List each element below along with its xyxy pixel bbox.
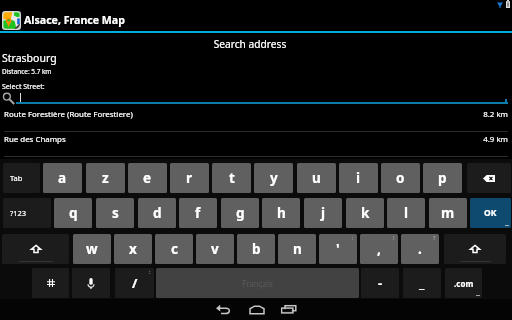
button[interactable]: Change keyboard (32, 268, 69, 298)
button[interactable]: : (319, 234, 357, 264)
staticText: 8.2 km (0, 109, 508, 120)
staticText: Strasbourg (2, 51, 57, 65)
button[interactable]: z (86, 163, 125, 193)
button[interactable]: Rue des Champs (0, 129, 512, 150)
staticText: e (143, 169, 152, 187)
staticText: ' (336, 240, 340, 258)
staticText: u (312, 169, 321, 187)
staticText: . (418, 240, 422, 258)
button[interactable]: Home (245, 302, 269, 318)
staticText: Tab (10, 173, 23, 183)
button[interactable]: Alsace, France Map (0, 0, 512, 32)
button[interactable]: Shift (2, 234, 69, 264)
button[interactable]: ?123 (3, 198, 51, 228)
staticText: Distance: 5.7 km (2, 67, 52, 76)
staticText: m (441, 204, 455, 222)
button[interactable]: h (262, 198, 300, 228)
button[interactable]: t (212, 163, 251, 193)
button[interactable]: n (278, 234, 316, 264)
button[interactable]: d (138, 198, 176, 228)
button[interactable]: b (237, 234, 275, 264)
button[interactable]: l (387, 198, 425, 228)
staticText: q (69, 204, 78, 222)
staticText: v (211, 240, 219, 258)
button[interactable]: u (297, 163, 336, 193)
staticText: k (361, 204, 370, 222)
staticText: s (112, 204, 119, 222)
staticText: b (252, 240, 261, 258)
button[interactable]: a (43, 163, 82, 193)
button[interactable]: _ (403, 268, 441, 298)
button[interactable]: q (54, 198, 92, 228)
button[interactable]: c (155, 234, 193, 264)
staticText: n (293, 240, 302, 258)
staticText: z (102, 169, 109, 187)
staticText: Français (242, 278, 273, 289)
button[interactable]: v (196, 234, 234, 264)
staticText: d (153, 204, 162, 222)
staticText: Select Street: (2, 82, 45, 92)
button[interactable]: s (96, 198, 134, 228)
button[interactable]: Route Forestière (Route Forestiere) (0, 104, 512, 125)
staticText: Route Forestière (Route Forestiere) (4, 109, 133, 120)
staticText: t (229, 169, 235, 187)
staticText: w (86, 240, 98, 258)
staticText: a (58, 169, 67, 187)
staticText: , (377, 240, 381, 258)
button[interactable]: o (381, 163, 420, 193)
button[interactable]: OK (470, 198, 511, 228)
button[interactable]: ! (360, 234, 398, 264)
staticText: j (321, 204, 326, 222)
button[interactable]: Voice input (72, 268, 110, 298)
button[interactable]: .com (445, 268, 482, 298)
button[interactable]: Back (212, 302, 236, 318)
button[interactable]: e (128, 163, 167, 193)
button[interactable]: - (361, 268, 399, 298)
staticText: .com (454, 278, 474, 289)
staticText: c (171, 240, 178, 258)
staticText: p (438, 169, 447, 187)
staticText: Alsace, France Map (24, 13, 125, 27)
button[interactable]: p (423, 163, 462, 193)
staticText: h (277, 204, 286, 222)
staticText: ? (433, 234, 436, 241)
staticText: ?123 (10, 208, 27, 218)
staticText: l (404, 204, 409, 222)
button[interactable]: w (73, 234, 111, 264)
button[interactable]: m (429, 198, 467, 228)
staticText: x (129, 240, 137, 258)
button[interactable]: Search (0, 89, 16, 105)
staticText: f (195, 204, 201, 222)
staticText: g (236, 204, 245, 222)
staticText: : (149, 268, 151, 275)
button[interactable]: f (179, 198, 217, 228)
button[interactable]: j (304, 198, 342, 228)
button[interactable]: Backspace (467, 163, 511, 193)
button[interactable]: g (221, 198, 259, 228)
button[interactable]: ? (401, 234, 439, 264)
button[interactable]: i (339, 163, 378, 193)
button[interactable]: Shift (444, 234, 506, 264)
staticText: : (352, 234, 354, 241)
staticText: i (356, 169, 361, 187)
staticText: 4.9 km (0, 134, 508, 145)
button[interactable]: y (254, 163, 293, 193)
staticText: ! (393, 234, 395, 241)
staticText: y (270, 169, 278, 187)
staticText: OK (484, 207, 497, 219)
button[interactable]: k (346, 198, 384, 228)
staticText: o (396, 169, 405, 187)
staticText: _ (419, 274, 425, 292)
staticText: / (132, 274, 138, 292)
staticText: r (186, 169, 193, 187)
button[interactable]: r (170, 163, 209, 193)
button[interactable]: x (114, 234, 152, 264)
button[interactable]: Recent apps (277, 302, 301, 318)
button[interactable]: Tab (3, 163, 40, 193)
button[interactable]: : (115, 268, 154, 298)
staticText: Search address (0, 37, 506, 51)
staticText: - (378, 274, 383, 292)
staticText: Rue des Champs (4, 134, 66, 145)
